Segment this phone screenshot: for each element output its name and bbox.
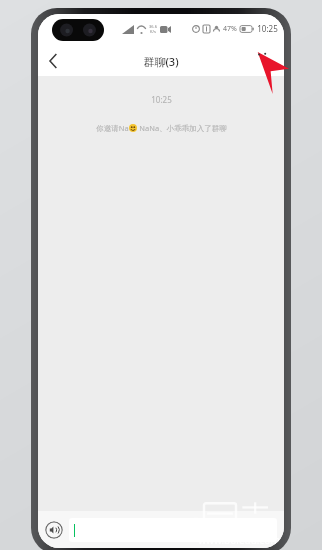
staticText: 你邀请Na bbox=[96, 123, 129, 133]
staticText: 10:25 bbox=[151, 94, 172, 105]
staticText: www.boledu.com bbox=[198, 533, 280, 547]
button[interactable] bbox=[69, 518, 277, 542]
button[interactable]: Back bbox=[38, 46, 68, 76]
staticText: NaNa、小乖乖加入了群聊 bbox=[137, 123, 227, 133]
staticText: 10:25 bbox=[257, 23, 278, 34]
staticText: K/s bbox=[150, 29, 156, 34]
button[interactable]: Voice input bbox=[45, 521, 63, 539]
staticText: 36.6 bbox=[149, 24, 157, 29]
staticText: 47% bbox=[223, 24, 237, 34]
staticText: 群聊(3) bbox=[143, 54, 179, 69]
